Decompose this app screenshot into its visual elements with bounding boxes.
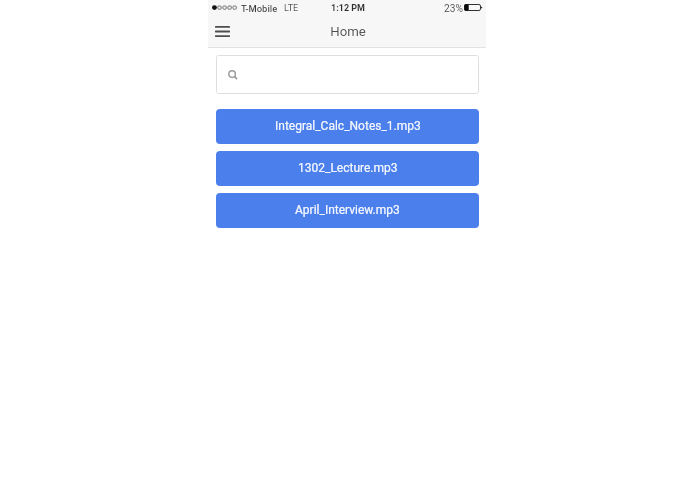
button[interactable]: 1302_Lecture.mp3: [216, 151, 479, 186]
staticText: LTE: [284, 3, 299, 14]
staticText: T-Mobile: [241, 3, 278, 14]
staticText: Home: [209, 24, 487, 39]
button[interactable]: Search: [216, 55, 479, 94]
staticText: April_Interview.mp3: [295, 203, 400, 217]
staticText: 1302_Lecture.mp3: [298, 161, 398, 175]
staticText: Integral_Calc_Notes_1.mp3: [275, 119, 421, 133]
staticText: 23%: [444, 3, 463, 15]
staticText: 1:12 PM: [209, 3, 487, 14]
button[interactable]: Integral_Calc_Notes_1.mp3: [216, 109, 479, 144]
button[interactable]: April_Interview.mp3: [216, 193, 479, 228]
button[interactable]: Open navigation menu: [210, 18, 235, 44]
